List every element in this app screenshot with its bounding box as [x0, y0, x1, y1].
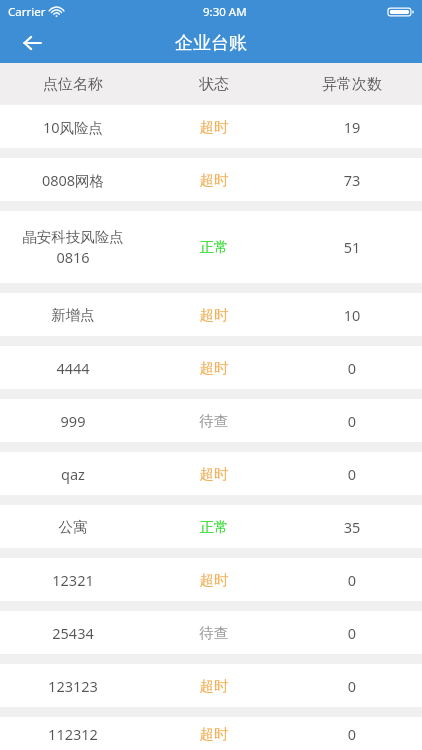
button[interactable]: 晶安科技风险点0816	[0, 211, 422, 283]
staticText: 35	[282, 517, 422, 537]
button[interactable]: 12321	[0, 558, 422, 601]
staticText: 10	[282, 305, 422, 325]
staticText: 123123	[14, 676, 132, 696]
button[interactable]: 新增点	[0, 293, 422, 336]
staticText: 9:30 AM	[203, 4, 247, 20]
staticText: 25434	[14, 623, 132, 643]
staticText: 异常次数	[282, 75, 422, 94]
staticText: 0	[282, 464, 422, 484]
staticText: 10风险点	[14, 117, 132, 137]
button[interactable]: Back	[10, 23, 54, 63]
staticText: 超时	[146, 571, 282, 589]
staticText: 12321	[14, 570, 132, 590]
staticText: 超时	[146, 171, 282, 189]
staticText: 正常	[146, 238, 282, 256]
staticText: 超时	[146, 118, 282, 136]
staticText: 超时	[146, 465, 282, 483]
staticText: 0808网格	[14, 170, 132, 190]
staticText: 112312	[14, 724, 132, 744]
staticText: 状态	[146, 75, 282, 94]
staticText: 0	[282, 570, 422, 590]
button[interactable]: 123123	[0, 664, 422, 707]
button[interactable]: 0808网格	[0, 158, 422, 201]
staticText: 0	[282, 676, 422, 696]
staticText: 新增点	[14, 306, 132, 324]
staticText: 待查	[146, 624, 282, 642]
staticText: 超时	[146, 359, 282, 377]
staticText: 待查	[146, 412, 282, 430]
staticText: 正常	[146, 518, 282, 536]
staticText: 0	[282, 724, 422, 744]
staticText: 超时	[146, 725, 282, 743]
staticText: 0	[282, 358, 422, 378]
staticText: 0	[282, 623, 422, 643]
staticText: 超时	[146, 677, 282, 695]
button[interactable]: 25434	[0, 611, 422, 654]
button[interactable]: qaz	[0, 452, 422, 495]
staticText: 73	[282, 170, 422, 190]
staticText: 4444	[14, 358, 132, 378]
staticText: 晶安科技风险点0816	[14, 228, 132, 267]
staticText: 999	[14, 411, 132, 431]
button[interactable]: 4444	[0, 346, 422, 389]
staticText: qaz	[14, 464, 132, 484]
staticText: 0	[282, 411, 422, 431]
staticText: Carrier	[8, 4, 46, 20]
button[interactable]: 公寓	[0, 505, 422, 548]
staticText: 超时	[146, 306, 282, 324]
staticText: 公寓	[14, 518, 132, 536]
button[interactable]: 112312	[0, 717, 422, 750]
button[interactable]: 10风险点	[0, 105, 422, 148]
staticText: 51	[282, 237, 422, 257]
staticText: 点位名称	[0, 75, 146, 94]
button[interactable]: 999	[0, 399, 422, 442]
staticText: 19	[282, 117, 422, 137]
staticText: 企业台账	[175, 32, 247, 55]
